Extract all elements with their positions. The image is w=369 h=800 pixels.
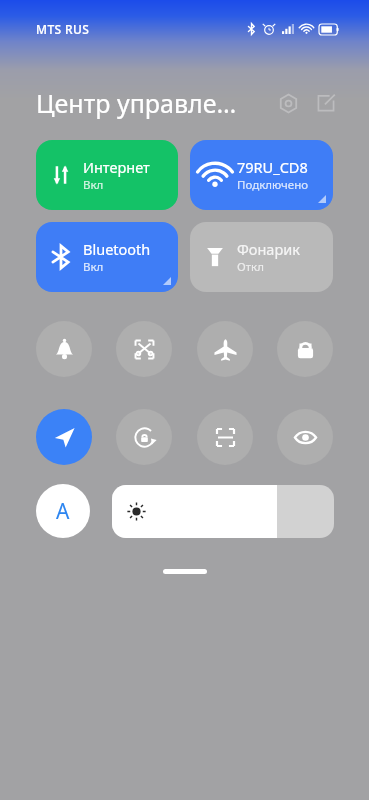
- button[interactable]: Bluetooth: [36, 222, 178, 292]
- staticText: Вкл: [83, 177, 104, 193]
- button[interactable]: Location: [36, 409, 92, 465]
- button[interactable]: Scan: [197, 409, 253, 465]
- button[interactable]: Интернет: [36, 140, 178, 210]
- staticText: Bluetooth: [83, 239, 151, 259]
- button[interactable]: Фонарик: [190, 222, 333, 292]
- staticText: A: [56, 497, 70, 526]
- staticText: 79RU_CD8: [237, 157, 308, 177]
- button[interactable]: Auto brightness: [36, 484, 90, 538]
- staticText: Интернет: [83, 157, 150, 177]
- staticText: Вкл: [83, 259, 104, 275]
- button[interactable]: Edit: [310, 87, 342, 119]
- staticText: MTS RUS: [36, 21, 90, 37]
- staticText: Откл: [237, 259, 264, 275]
- button[interactable]: Silent mode: [36, 321, 92, 377]
- staticText: Подключено: [237, 177, 309, 193]
- button[interactable]: Screenshot: [116, 321, 172, 377]
- staticText: Фонарик: [237, 239, 300, 259]
- button[interactable]: Reading mode: [277, 409, 333, 465]
- button[interactable]: Brightness: [112, 485, 334, 538]
- button[interactable]: Settings: [272, 87, 304, 119]
- button[interactable]: 79RU_CD8: [190, 140, 333, 210]
- staticText: Центр управле…: [36, 86, 237, 120]
- button[interactable]: Airplane mode: [197, 321, 253, 377]
- button[interactable]: Auto rotate: [116, 409, 172, 465]
- button[interactable]: Lock screen: [277, 321, 333, 377]
